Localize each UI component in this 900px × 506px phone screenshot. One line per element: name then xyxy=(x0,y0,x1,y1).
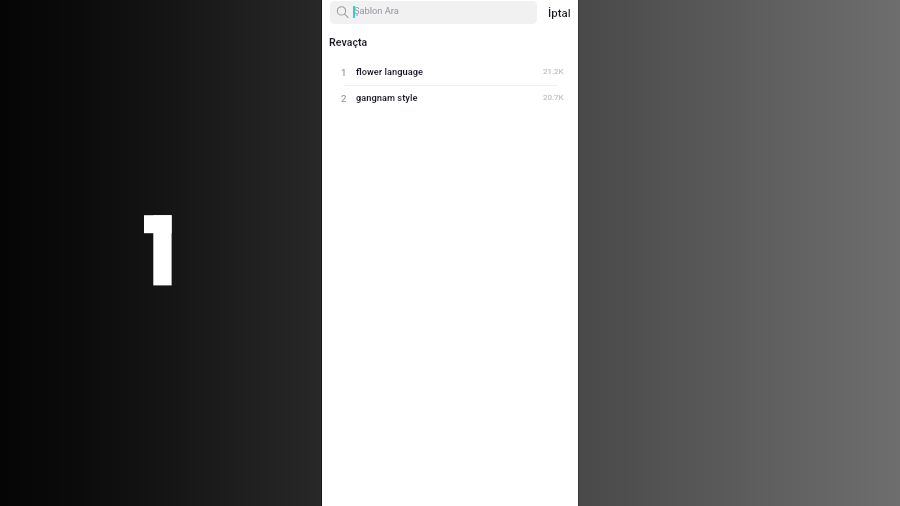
button[interactable]: İptal xyxy=(540,1,573,24)
button[interactable]: 1 xyxy=(322,61,578,86)
staticText: Revaçta xyxy=(329,36,368,48)
staticText: flower language xyxy=(356,66,423,77)
staticText: 20.7K xyxy=(543,93,564,102)
staticText: 1 xyxy=(341,67,347,78)
staticText: 2 xyxy=(341,93,347,104)
staticText: İptal xyxy=(548,6,571,19)
button[interactable]: Search xyxy=(330,1,537,24)
staticText: Şablon Ara xyxy=(354,5,399,16)
staticText: 21.2K xyxy=(543,67,564,76)
other: Search xyxy=(337,6,350,19)
button[interactable]: 2 xyxy=(322,87,578,112)
staticText: gangnam style xyxy=(356,92,418,103)
